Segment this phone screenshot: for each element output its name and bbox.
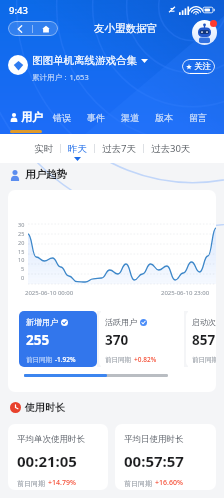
button[interactable]: 平均单次使用时长	[8, 424, 108, 490]
staticText: 使用时长	[25, 401, 65, 414]
staticText: -1.92%	[55, 355, 76, 364]
staticText: 错误	[53, 112, 71, 123]
button[interactable]: 关注	[182, 59, 215, 74]
staticText: 25	[18, 230, 25, 237]
staticText: 00:21:05	[17, 451, 77, 471]
staticText: 9:43	[9, 4, 28, 17]
staticText: 前日同期	[105, 356, 131, 364]
button[interactable]: 过去7天	[95, 134, 143, 163]
staticText: 2025-06-10 00:00	[25, 289, 74, 297]
staticText: 用户趋势	[25, 168, 67, 181]
staticText: 平均单次使用时长	[17, 434, 85, 445]
staticText: 857	[192, 331, 216, 349]
button[interactable]: 事件	[79, 108, 113, 126]
staticText: 平均日使用时长	[124, 434, 184, 445]
staticText: 前日同期	[124, 479, 152, 488]
staticText: +14.79%	[48, 478, 76, 488]
staticText: 活跃用户	[105, 317, 137, 327]
button[interactable]: 渠道	[113, 108, 147, 126]
staticText: 启动次数	[192, 317, 216, 327]
button[interactable]: 实时	[27, 134, 60, 163]
button[interactable]: 错误	[45, 108, 79, 126]
button[interactable]: 留言	[181, 108, 215, 126]
staticText: 20	[18, 239, 25, 246]
staticText: 2025-06-10 23:00	[161, 289, 210, 297]
staticText: 实时	[34, 143, 53, 155]
staticText: 30	[18, 221, 25, 228]
button[interactable]: 昨天	[61, 134, 94, 163]
staticText: 15	[18, 248, 25, 255]
staticText: +0.82%	[134, 355, 157, 364]
staticText: 友小盟数据官	[94, 22, 157, 35]
staticText: 渠道	[121, 112, 139, 123]
staticText: 前日同期	[17, 479, 45, 488]
staticText: 前日同期	[192, 356, 216, 364]
staticText: 图图单机离线游戏合集	[32, 54, 137, 67]
button[interactable]: 新增用户	[19, 311, 97, 367]
button[interactable]: 过去30天	[144, 134, 198, 163]
staticText: 255	[26, 331, 50, 349]
staticText: 用户	[21, 110, 43, 124]
button[interactable]: 用户	[9, 108, 45, 126]
staticText: 事件	[87, 112, 105, 123]
staticText: 版本	[155, 112, 173, 123]
staticText: 5	[21, 265, 25, 272]
staticText: 00:57:57	[124, 451, 184, 471]
staticText: 过去7天	[102, 142, 136, 155]
staticText: 留言	[189, 112, 207, 123]
button[interactable]: Back	[8, 21, 32, 36]
staticText: 过去30天	[151, 142, 191, 155]
staticText: 累计用户：1,653	[32, 72, 89, 82]
button[interactable]: 版本	[147, 108, 181, 126]
button[interactable]: Home	[33, 21, 58, 36]
staticText: 关注	[194, 61, 211, 72]
staticText: +16.60%	[155, 478, 183, 488]
staticText: 昨天	[68, 143, 87, 155]
staticText: 新增用户	[26, 317, 58, 327]
staticText: 370	[105, 331, 129, 349]
staticText: 0	[21, 274, 25, 281]
button[interactable]: 启动次数	[186, 311, 216, 367]
staticText: 10	[18, 256, 25, 263]
button[interactable]: 平均日使用时长	[115, 424, 216, 490]
button[interactable]: 活跃用户	[99, 311, 184, 367]
staticText: 前日同期	[26, 356, 52, 364]
